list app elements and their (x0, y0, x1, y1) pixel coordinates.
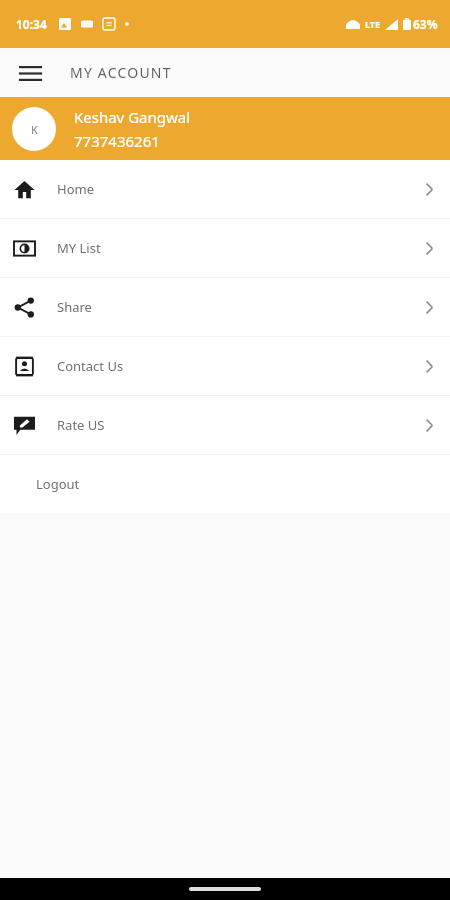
staticText: Rate US (57, 416, 105, 434)
staticText: Keshav Gangwal (74, 107, 191, 127)
button[interactable]: Contact Us (0, 337, 450, 395)
staticText: 10:34 (16, 16, 47, 32)
staticText: MY ACCOUNT (70, 63, 172, 82)
staticText: Home (57, 180, 94, 198)
staticText: MY List (57, 239, 101, 257)
button[interactable]: Rate US (0, 396, 450, 454)
staticText: 63% (413, 16, 438, 32)
button[interactable]: Home (0, 160, 450, 218)
staticText: Share (57, 298, 92, 316)
staticText: 7737436261 (74, 131, 160, 151)
button[interactable]: K (0, 97, 450, 160)
staticText: LTE (365, 18, 381, 30)
staticText: Contact Us (57, 357, 124, 375)
staticText: Logout (36, 475, 80, 493)
button[interactable]: Open navigation menu (8, 51, 52, 95)
button[interactable]: Logout (0, 455, 450, 513)
button[interactable]: Share (0, 278, 450, 336)
staticText: K (31, 122, 38, 137)
button[interactable]: MY List (0, 219, 450, 277)
